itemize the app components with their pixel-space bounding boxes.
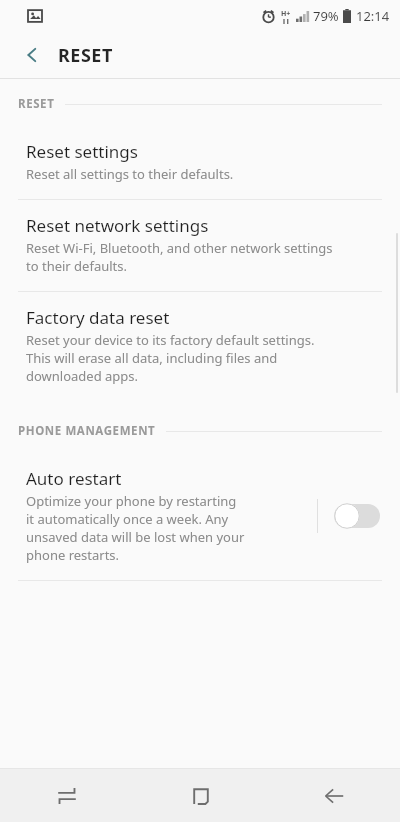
staticText: Auto restart: [26, 467, 122, 490]
button[interactable]: Auto restart toggle, off: [334, 503, 380, 529]
staticText: Reset settings: [26, 140, 138, 163]
button[interactable]: Recent apps: [0, 769, 134, 822]
staticText: This will erase all data, including file…: [26, 349, 278, 367]
staticText: PHONE MANAGEMENT: [18, 423, 156, 439]
button[interactable]: Factory data reset: [0, 292, 400, 401]
button[interactable]: Back: [12, 35, 52, 75]
staticText: RESET: [58, 43, 113, 68]
staticText: Reset network settings: [26, 214, 209, 237]
staticText: H+: [281, 9, 291, 19]
staticText: phone restarts.: [26, 546, 120, 564]
button[interactable]: Reset network settings: [0, 200, 400, 291]
staticText: Reset Wi-Fi, Bluetooth, and other networ…: [26, 239, 333, 257]
staticText: Factory data reset: [26, 306, 170, 329]
staticText: 79%: [313, 7, 339, 25]
staticText: downloaded apps.: [26, 367, 139, 385]
staticText: unsaved data will be lost when your: [26, 528, 245, 546]
staticText: Reset all settings to their defaults.: [26, 165, 234, 183]
button[interactable]: Auto restart: [0, 455, 400, 580]
staticText: Optimize your phone by restarting: [26, 492, 237, 510]
staticText: RESET: [18, 96, 55, 112]
staticText: 12:14: [356, 7, 390, 25]
staticText: to their defaults.: [26, 257, 127, 275]
button[interactable]: Back: [267, 769, 400, 822]
staticText: it automatically once a week. Any: [26, 510, 229, 528]
button[interactable]: Home: [134, 769, 267, 822]
button[interactable]: Reset settings: [0, 126, 400, 199]
staticText: Reset your device to its factory default…: [26, 331, 315, 349]
